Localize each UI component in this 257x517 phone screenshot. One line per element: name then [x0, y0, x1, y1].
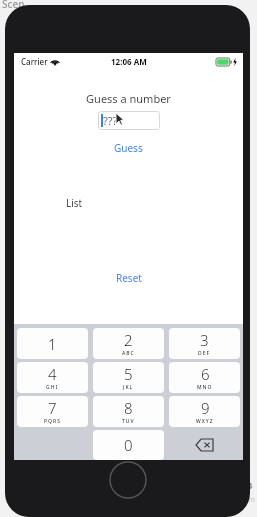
- staticText: 9: [201, 398, 210, 418]
- staticText: 2: [124, 330, 133, 350]
- button[interactable]: ???: [98, 111, 160, 130]
- button[interactable]: 5: [93, 362, 164, 393]
- staticText: TUV: [122, 418, 135, 425]
- staticText: ???: [103, 113, 118, 128]
- staticText: Guess: [114, 141, 143, 155]
- button[interactable]: 1: [17, 328, 88, 359]
- staticText: 12:06 AM: [111, 56, 147, 67]
- button[interactable]: 4: [17, 362, 88, 393]
- button[interactable]: 8: [93, 396, 164, 427]
- staticText: 8: [124, 398, 133, 418]
- button[interactable]: 7: [17, 396, 88, 427]
- staticText: JKL: [123, 384, 134, 391]
- button[interactable]: Guess: [108, 140, 149, 156]
- button[interactable]: 3: [169, 328, 240, 359]
- staticText: 1: [48, 334, 57, 354]
- staticText: WXYZ: [196, 418, 214, 425]
- staticText: Guess a number: [86, 91, 171, 106]
- button[interactable]: 9: [169, 396, 240, 427]
- staticText: 3: [200, 330, 209, 350]
- button[interactable]: 2: [93, 328, 164, 359]
- staticText: 13: [242, 479, 253, 491]
- staticText: 5: [124, 364, 133, 384]
- staticText: MNO: [197, 384, 213, 391]
- staticText: 0: [124, 435, 133, 455]
- button[interactable]: Home: [109, 461, 147, 499]
- staticText: DEF: [198, 350, 211, 357]
- button[interactable]: Delete: [169, 430, 240, 460]
- button[interactable]: 0: [93, 430, 164, 460]
- button[interactable]: List: [66, 196, 83, 210]
- staticText: GHI: [46, 384, 59, 391]
- staticText: container for system: [187, 495, 255, 505]
- button[interactable]: 6: [169, 362, 240, 393]
- button[interactable]: Reset: [110, 270, 148, 286]
- staticText: Carrier: [21, 56, 48, 67]
- staticText: 4: [48, 364, 57, 384]
- staticText: Scen: [2, 0, 25, 11]
- staticText: 7: [48, 398, 57, 418]
- staticText: PQRS: [44, 418, 61, 425]
- staticText: ABC: [122, 350, 135, 357]
- staticText: Reset: [116, 271, 142, 285]
- staticText: 6: [201, 364, 210, 384]
